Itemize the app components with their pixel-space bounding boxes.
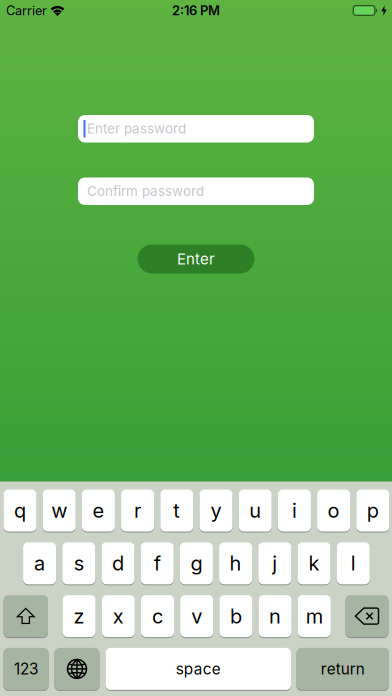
button[interactable]: m (298, 595, 331, 637)
staticText: k (308, 551, 319, 575)
staticText: 2:16 PM (172, 3, 220, 18)
staticText: h (230, 551, 242, 575)
button[interactable]: u (239, 489, 272, 531)
staticText: j (272, 551, 277, 575)
button[interactable]: Enter password (78, 115, 314, 142)
staticText: s (74, 551, 84, 575)
staticText: Enter (177, 250, 215, 268)
staticText: t (173, 499, 180, 522)
button[interactable]: a (23, 542, 56, 584)
staticText: m (306, 604, 323, 628)
button[interactable]: Return (296, 648, 389, 690)
staticText: n (269, 604, 281, 628)
button[interactable]: p (356, 489, 389, 531)
staticText: z (74, 604, 85, 628)
staticText: f (154, 551, 161, 575)
button[interactable]: n (259, 595, 292, 637)
staticText: Confirm password (87, 183, 204, 199)
button[interactable]: j (258, 542, 291, 584)
button[interactable]: g (180, 542, 213, 584)
button[interactable]: b (219, 595, 252, 637)
button[interactable]: c (141, 595, 174, 637)
staticText: r (134, 499, 141, 522)
staticText: c (152, 604, 163, 628)
staticText: y (210, 499, 221, 522)
button[interactable]: h (219, 542, 252, 584)
button[interactable]: Enter (137, 244, 254, 273)
button[interactable]: Shift (3, 595, 48, 637)
button[interactable]: Delete (345, 595, 388, 637)
staticText: p (367, 499, 379, 522)
button[interactable]: v (180, 595, 213, 637)
staticText: space (176, 660, 221, 678)
staticText: Enter password (87, 121, 186, 137)
button[interactable]: Numbers (3, 648, 48, 690)
staticText: l (351, 551, 356, 575)
staticText: x (113, 604, 124, 628)
button[interactable]: Confirm password (78, 177, 314, 205)
button[interactable]: k (297, 542, 330, 584)
button[interactable]: space (105, 648, 291, 690)
button[interactable]: t (160, 489, 193, 531)
staticText: q (14, 499, 26, 522)
staticText: u (249, 499, 261, 522)
button[interactable]: i (278, 489, 311, 531)
staticText: g (190, 551, 202, 575)
button[interactable]: x (102, 595, 135, 637)
staticText: return (321, 660, 365, 678)
button[interactable]: d (101, 542, 134, 584)
staticText: i (292, 499, 297, 522)
button[interactable]: s (62, 542, 95, 584)
staticText: 123 (14, 660, 38, 678)
button[interactable]: l (337, 542, 370, 584)
button[interactable]: y (199, 489, 232, 531)
staticText: o (328, 499, 340, 522)
staticText: Carrier (6, 3, 47, 18)
staticText: a (34, 551, 45, 575)
button[interactable]: o (317, 489, 350, 531)
button[interactable]: Next keyboard (54, 648, 99, 690)
staticText: w (51, 499, 67, 522)
button[interactable]: f (141, 542, 174, 584)
button[interactable]: w (43, 489, 76, 531)
staticText: v (191, 604, 202, 628)
staticText: b (230, 604, 242, 628)
staticText: e (92, 499, 104, 522)
button[interactable]: z (63, 595, 96, 637)
staticText: d (112, 551, 124, 575)
button[interactable]: e (82, 489, 115, 531)
button[interactable]: r (121, 489, 154, 531)
button[interactable]: q (3, 489, 36, 531)
